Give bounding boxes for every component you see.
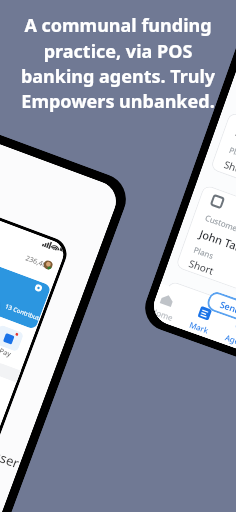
staticText: Plans [192,244,216,261]
button[interactable] [0,324,24,352]
staticText: Transfer to user [0,422,22,472]
button[interactable]: Name [210,112,236,218]
staticText: Send Money [218,298,236,327]
button[interactable]: Mark [178,296,227,341]
button[interactable]: Send Money [205,290,236,335]
staticText: 2 weeks [235,273,236,299]
staticText: 236,400 [24,253,52,272]
staticText: Customer ID [204,212,236,238]
button[interactable]: Customer ID [175,184,236,316]
button[interactable]: Agent [215,309,236,354]
staticText: 13 Contributors [4,302,41,322]
button[interactable] [156,280,236,369]
staticText: Plans [228,144,236,161]
staticText: Short [187,256,216,278]
button[interactable]: 13 Contributors [0,238,52,330]
staticText: John Talaski [197,226,236,261]
staticText: Agent [224,331,236,349]
button[interactable] [0,361,21,383]
staticText: Home [149,305,175,323]
staticText: Name [234,126,236,146]
staticText: Short [222,157,236,179]
staticText: Mark [188,319,211,336]
staticText: A communal funding practice, via POS ban… [14,13,222,113]
staticText: Pay [0,346,12,360]
button[interactable]: Home [149,286,189,328]
